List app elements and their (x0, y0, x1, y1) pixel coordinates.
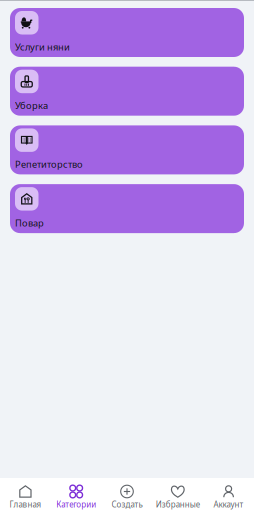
button[interactable]: Репетиторство (10, 125, 244, 174)
button[interactable]: Услуги няни (10, 8, 244, 57)
button[interactable]: Избранные (152, 478, 203, 510)
staticText: Избранные (156, 499, 200, 510)
staticText: Создать (111, 499, 142, 510)
staticText: Репетиторство (15, 158, 83, 170)
staticText: Уборка (15, 99, 48, 112)
button[interactable]: Аккаунт (203, 478, 254, 510)
staticText: Услуги няни (15, 41, 70, 53)
button[interactable]: Главная (0, 478, 51, 510)
staticText: Аккаунт (214, 499, 244, 510)
button[interactable]: Создать (102, 478, 152, 510)
button[interactable]: Категории (51, 478, 102, 510)
staticText: Повар (15, 217, 44, 229)
button[interactable]: Уборка (10, 67, 244, 116)
staticText: Категории (56, 499, 96, 510)
staticText: Главная (9, 499, 41, 510)
button[interactable]: Повар (10, 184, 244, 233)
